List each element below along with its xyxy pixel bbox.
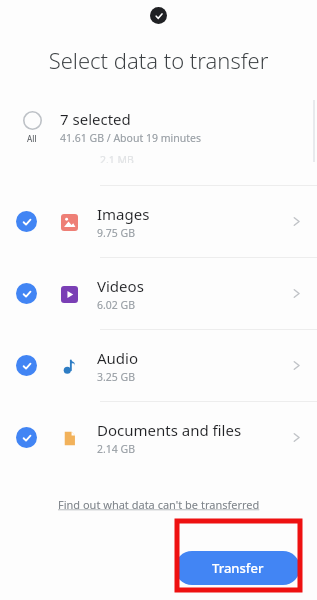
staticText: Documents and files xyxy=(97,420,242,440)
staticText: 41.61 GB / About 19 minutes xyxy=(60,131,201,145)
button[interactable]: Audio xyxy=(0,330,317,402)
staticText: 6.02 GB xyxy=(97,298,136,312)
staticText: 2.14 GB xyxy=(97,442,136,456)
staticText: Videos xyxy=(97,276,144,296)
button[interactable]: Transfer xyxy=(175,551,300,585)
staticText: All xyxy=(27,133,37,144)
button[interactable]: Videos xyxy=(0,258,317,330)
staticText: 9.75 GB xyxy=(97,226,136,240)
staticText: Images xyxy=(97,204,150,224)
staticText: Transfer xyxy=(212,559,264,577)
button[interactable]: Images xyxy=(0,186,317,258)
button[interactable]: Documents and files xyxy=(0,402,317,473)
staticText: Audio xyxy=(97,348,139,368)
staticText: Select data to transfer xyxy=(12,45,305,75)
button[interactable]: All xyxy=(0,101,317,153)
button[interactable]: Find out what data can't be transferred xyxy=(52,494,266,515)
staticText: 7 selected xyxy=(60,109,131,129)
staticText: 3.25 GB xyxy=(97,370,136,384)
staticText: 2.1 MB xyxy=(100,153,134,163)
